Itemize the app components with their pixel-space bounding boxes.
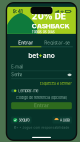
- staticText: RECEBA ATÉ: [32, 7, 53, 11]
- staticText: Seguro: [19, 118, 30, 122]
- staticText: E-mail: [11, 64, 23, 69]
- button[interactable]: Entrar: [11, 102, 72, 109]
- staticText: CASHBACK: [32, 22, 70, 30]
- button[interactable]: Ajuda: [52, 117, 72, 124]
- button[interactable]: Esqueceu a senha?: [40, 81, 72, 86]
- staticText: 20% DE: [32, 11, 66, 22]
- button[interactable]: Entrar: [10, 40, 42, 47]
- staticText: 18+ • Jogue com responsabilidade: [13, 126, 69, 129]
- staticText: Lembrar-me: [18, 88, 38, 93]
- staticText: ano: [43, 52, 55, 60]
- staticText: TODOS OS DIAS: [32, 30, 55, 34]
- staticText: bet: [28, 52, 38, 60]
- staticText: Ajuda: [60, 118, 70, 122]
- staticText: 9:41: [13, 8, 23, 14]
- staticText: Código de referência (opcional): [16, 95, 67, 100]
- staticText: Registar-se: [44, 40, 70, 45]
- button[interactable]: Código de referência (opcional): [7, 95, 76, 101]
- staticText: Senha: [11, 72, 22, 77]
- staticText: Esqueceu a senha?: [40, 81, 72, 86]
- button[interactable]: Registar-se: [41, 40, 73, 47]
- staticText: Entrar: [18, 40, 33, 45]
- staticText: Entrar: [34, 103, 49, 108]
- button[interactable]: Lembrar-me: [7, 88, 76, 94]
- button[interactable]: Seguro: [11, 117, 32, 124]
